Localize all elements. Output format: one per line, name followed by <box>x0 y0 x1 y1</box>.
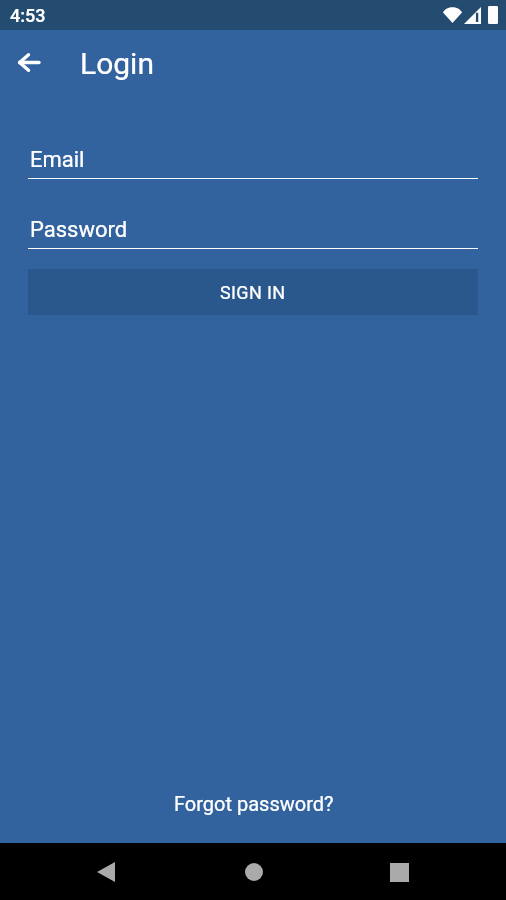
button[interactable]: Home <box>230 848 278 896</box>
staticText: Password <box>30 217 128 243</box>
staticText: Login <box>80 46 154 81</box>
button[interactable]: Back <box>6 40 50 84</box>
staticText: Email <box>30 147 85 173</box>
staticText: 4:53 <box>10 5 46 26</box>
button[interactable]: Forgot password? <box>0 759 506 843</box>
staticText: Forgot password? <box>174 792 334 815</box>
button[interactable]: Password <box>28 217 478 249</box>
button[interactable]: Back <box>82 848 130 896</box>
button[interactable]: Email <box>28 147 478 179</box>
button[interactable]: Recent apps <box>375 848 423 896</box>
staticText: SIGN IN <box>220 282 286 303</box>
button[interactable]: SIGN IN <box>28 269 478 315</box>
